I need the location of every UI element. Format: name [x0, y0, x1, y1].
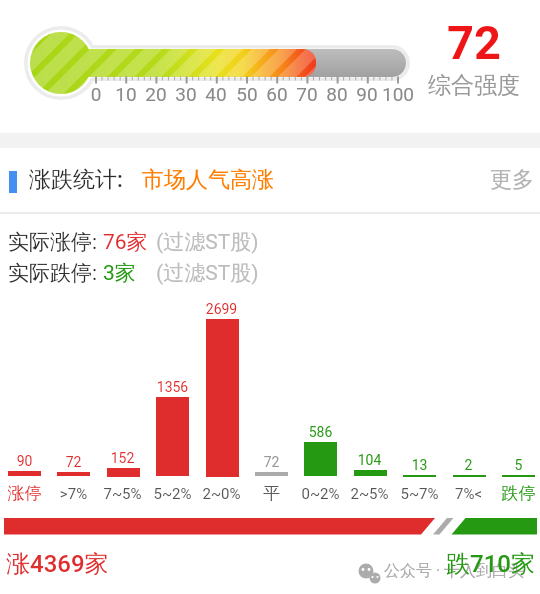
staticText: 平	[247, 483, 296, 504]
staticText: 2699	[197, 301, 246, 317]
staticText: 152	[98, 450, 147, 466]
staticText: 5	[494, 457, 540, 473]
staticText: 72	[414, 15, 534, 70]
staticText: 跌停	[494, 483, 540, 504]
staticText: 80	[317, 83, 357, 105]
staticText: 104	[345, 452, 394, 468]
staticText: 公众号 · 十入到白头	[384, 561, 525, 581]
staticText: 7~5%	[98, 485, 147, 503]
staticText: 76家	[103, 229, 148, 255]
staticText: 实际跌停:	[8, 260, 98, 286]
staticText: 10	[106, 83, 146, 105]
staticText: 2~0%	[197, 485, 246, 503]
staticText: 7%<	[444, 485, 493, 503]
staticText: 跌710家	[446, 549, 535, 579]
staticText: 70	[287, 83, 327, 105]
staticText: 涨跌统计:	[29, 166, 123, 194]
staticText: 涨4369家	[6, 549, 109, 579]
staticText: 市场人气高涨	[142, 166, 274, 194]
staticText: 72	[49, 454, 98, 470]
staticText: 586	[296, 424, 345, 440]
staticText: 2~5%	[345, 485, 394, 503]
staticText: 90	[347, 83, 387, 105]
staticText: 60	[257, 83, 297, 105]
staticText: 实际涨停:	[8, 229, 98, 255]
staticText: 20	[136, 83, 176, 105]
staticText: 100	[378, 83, 418, 105]
staticText: 50	[227, 83, 267, 105]
staticText: >7%	[49, 485, 98, 503]
staticText: 72	[247, 454, 296, 470]
staticText: 5~2%	[148, 485, 197, 503]
staticText: 5~7%	[395, 485, 444, 503]
staticText: 1356	[148, 379, 197, 395]
staticText: 综合强度	[408, 71, 540, 100]
staticText: 涨停	[0, 483, 49, 504]
staticText: 90	[0, 453, 49, 469]
staticText: 2	[444, 457, 493, 473]
staticText: 0~2%	[296, 485, 345, 503]
staticText: 3家	[103, 260, 136, 286]
staticText: (过滤ST股)	[156, 229, 259, 255]
staticText: 13	[395, 457, 444, 473]
staticText: 0	[76, 83, 116, 105]
button[interactable]: 更多	[490, 166, 534, 194]
staticText: (过滤ST股)	[156, 260, 259, 286]
staticText: 40	[196, 83, 236, 105]
staticText: 30	[166, 83, 206, 105]
